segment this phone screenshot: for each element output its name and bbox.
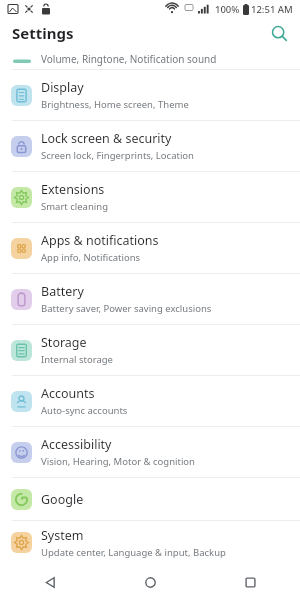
button[interactable]: Display: [0, 70, 300, 120]
staticText: Internal storage: [41, 353, 113, 366]
staticText: Settings: [12, 23, 74, 43]
button[interactable]: Recent apps: [200, 564, 300, 600]
staticText: 12:51 AM: [251, 3, 293, 16]
button[interactable]: Lock screen & security: [0, 121, 300, 171]
staticText: Display: [41, 79, 84, 96]
staticText: Accessibility: [41, 436, 112, 453]
button[interactable]: Google: [0, 478, 300, 520]
button[interactable]: System: [0, 521, 300, 564]
staticText: 100%: [215, 3, 240, 16]
button[interactable]: Home: [100, 564, 200, 600]
button[interactable]: Accessibility: [0, 427, 300, 477]
staticText: Auto-sync accounts: [41, 404, 128, 417]
button[interactable]: Accounts: [0, 376, 300, 426]
staticText: Update center, Language & input, Backup: [41, 546, 226, 559]
staticText: App info, Notifications: [41, 251, 141, 264]
button[interactable]: Volume, Ringtone, Notification sound: [0, 48, 300, 69]
staticText: Screen lock, Fingerprints, Location: [41, 149, 194, 162]
button[interactable]: Storage: [0, 325, 300, 375]
staticText: Storage: [41, 334, 87, 351]
button[interactable]: Search: [264, 18, 294, 48]
staticText: Brightness, Home screen, Theme: [41, 98, 189, 111]
staticText: Battery saver, Power saving exclusions: [41, 302, 212, 315]
button[interactable]: Apps & notifications: [0, 223, 300, 273]
staticText: Google: [41, 491, 84, 508]
staticText: Apps & notifications: [41, 232, 159, 249]
button[interactable]: Extensions: [0, 172, 300, 222]
button[interactable]: Back: [0, 564, 100, 600]
staticText: Accounts: [41, 385, 95, 402]
staticText: Smart cleaning: [41, 200, 108, 213]
staticText: Extensions: [41, 181, 105, 198]
button[interactable]: Battery: [0, 274, 300, 324]
staticText: System: [41, 527, 84, 544]
staticText: Battery: [41, 283, 84, 300]
staticText: Vision, Hearing, Motor & cognition: [41, 455, 195, 468]
staticText: Lock screen & security: [41, 130, 172, 147]
staticText: Volume, Ringtone, Notification sound: [41, 52, 217, 66]
